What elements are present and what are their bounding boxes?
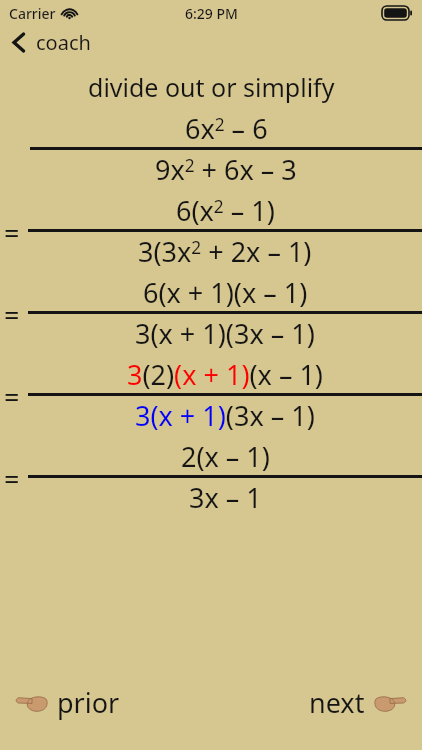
staticText: divide out or simplify	[88, 70, 335, 104]
other: Back	[11, 32, 26, 53]
staticText: 3(x + 1)(3x – 1)	[135, 315, 315, 352]
staticText: 6x2 – 6	[185, 110, 268, 147]
staticText: 2(x – 1)	[181, 438, 270, 475]
staticText: 9x2 + 6x – 3	[155, 151, 297, 188]
button[interactable]: next	[305, 678, 410, 727]
staticText: =	[4, 296, 20, 330]
button[interactable]: Back	[0, 26, 422, 58]
button[interactable]: prior	[12, 678, 124, 727]
staticText: =	[4, 378, 20, 412]
staticText: 6(x2 – 1)	[176, 192, 275, 229]
staticText: 3x – 1	[189, 479, 262, 516]
staticText: =	[4, 214, 20, 248]
staticText: 3(2)(x + 1)(x – 1)	[127, 356, 323, 393]
staticText: =	[4, 460, 20, 494]
staticText: 3(3x2 + 2x – 1)	[138, 233, 312, 270]
staticText: coach	[36, 29, 91, 56]
staticText: 3(x + 1)(3x – 1)	[135, 397, 315, 434]
staticText: 6:29 PM	[185, 4, 238, 23]
staticText: prior	[57, 684, 120, 721]
staticText: next	[309, 684, 365, 721]
staticText: 6(x + 1)(x – 1)	[143, 274, 308, 311]
staticText: Carrier	[9, 4, 56, 23]
